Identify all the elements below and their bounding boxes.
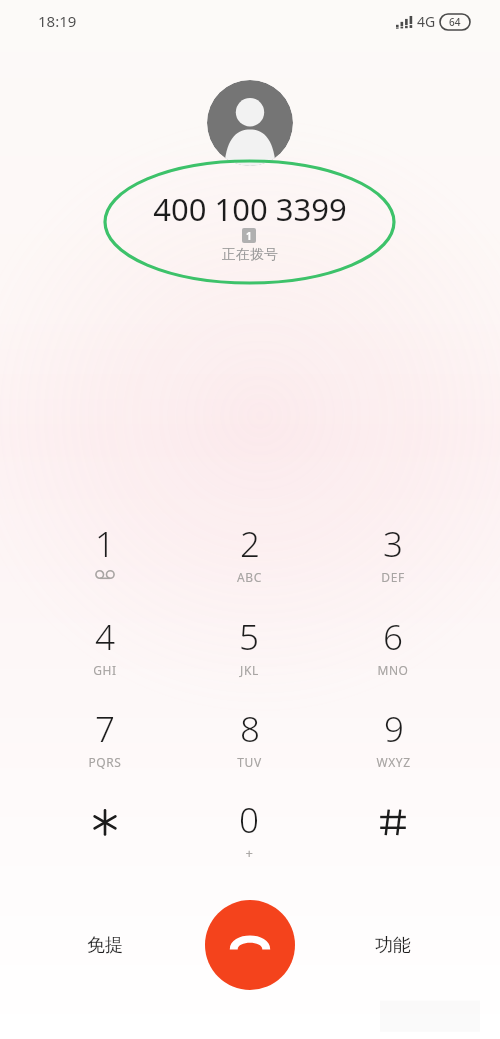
button[interactable]: 8: [201, 705, 297, 789]
button[interactable]: End call: [205, 900, 295, 990]
button[interactable]: [57, 796, 153, 880]
button[interactable]: [345, 796, 441, 880]
staticText: WXYZ: [376, 754, 411, 770]
button[interactable]: 2: [201, 520, 297, 604]
staticText: 4: [95, 613, 115, 661]
staticText: 6: [383, 613, 403, 661]
staticText: 9: [384, 705, 404, 753]
button[interactable]: Contact photo: [207, 80, 293, 166]
button[interactable]: 免提: [57, 920, 153, 970]
staticText: 64: [449, 15, 461, 29]
staticText: 1: [246, 229, 252, 243]
button[interactable]: 5: [201, 613, 297, 697]
staticText: 2: [240, 520, 260, 568]
button[interactable]: 1: [57, 520, 153, 604]
staticText: 7: [95, 705, 115, 753]
button[interactable]: 功能: [345, 920, 441, 970]
staticText: PQRS: [88, 754, 122, 770]
staticText: MNO: [377, 662, 409, 678]
staticText: 5: [239, 613, 259, 661]
staticText: 功能: [375, 934, 411, 957]
button[interactable]: 4: [57, 613, 153, 697]
staticText: ABC: [237, 569, 262, 585]
button[interactable]: 9: [345, 705, 441, 789]
button[interactable]: 7: [57, 705, 153, 789]
staticText: DEF: [381, 569, 405, 585]
staticText: 1: [95, 520, 115, 568]
staticText: 4G: [417, 12, 436, 31]
staticText: GHI: [93, 662, 117, 678]
staticText: 18:19: [38, 11, 77, 31]
staticText: 8: [240, 705, 260, 753]
staticText: 免提: [87, 934, 123, 957]
staticText: 400 100 3399: [153, 188, 347, 230]
button[interactable]: 6: [345, 613, 441, 697]
staticText: 0: [239, 796, 259, 844]
staticText: 正在拨号: [222, 246, 278, 264]
button[interactable]: 3: [345, 520, 441, 604]
button[interactable]: 0: [201, 796, 297, 880]
staticText: 3: [383, 520, 403, 568]
staticText: +: [245, 844, 254, 862]
staticText: TUV: [237, 754, 262, 770]
staticText: JKL: [240, 662, 259, 678]
